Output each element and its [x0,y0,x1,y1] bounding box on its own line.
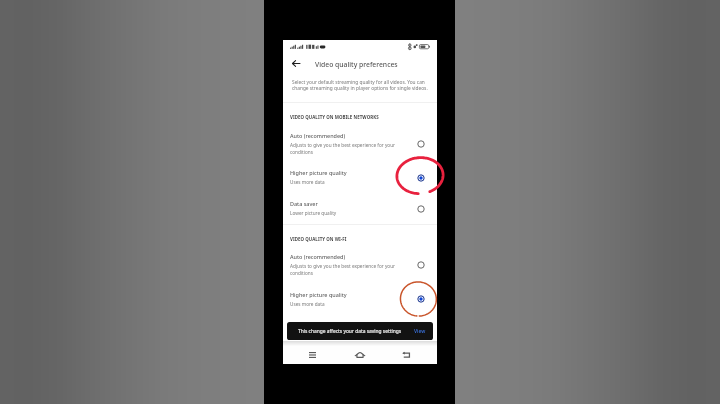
button[interactable] [283,285,437,308]
button[interactable]: This change affects your data saving set… [287,322,433,340]
staticText: This change affects your data saving set… [298,328,402,335]
staticText: View [414,328,426,335]
staticText: Auto (recommended) [290,253,346,260]
staticText: Higher picture quality [290,291,347,298]
button[interactable]: View [407,324,433,339]
staticText: Video quality preferences [315,60,398,69]
button[interactable] [283,194,437,217]
staticText: Auto (recommended) [290,132,346,139]
button[interactable] [283,247,437,277]
staticText: VIDEO QUALITY ON WI-FI [290,236,347,242]
staticText: Lower picture quality [290,210,337,216]
staticText: Adjusts to give you the best experience … [290,142,395,156]
staticText: Select your default streaming quality fo… [292,79,428,91]
button[interactable]: Home [351,348,369,362]
staticText: Uses more data [290,179,325,185]
button[interactable]: Back [397,348,415,362]
button[interactable] [283,163,437,186]
staticText: Higher picture quality [290,169,347,176]
staticText: Data saver [290,200,318,207]
button[interactable]: Recent apps [303,348,321,362]
staticText: Uses more data [290,301,325,307]
button[interactable] [283,126,437,156]
staticText: Adjusts to give you the best experience … [290,263,395,277]
staticText: VIDEO QUALITY ON MOBILE NETWORKS [290,114,379,120]
button[interactable]: Back [286,53,306,73]
